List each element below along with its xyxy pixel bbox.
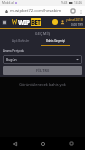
button[interactable]: Account xyxy=(60,20,65,25)
staticText: Bahis Geçmişi xyxy=(46,39,65,43)
button[interactable]: Back xyxy=(0,137,29,150)
staticText: m.wipbet72.com/hesabim xyxy=(10,8,62,14)
button[interactable]: More options xyxy=(77,8,84,15)
button[interactable]: Menu xyxy=(2,20,7,25)
staticText: 0.00 TRY xyxy=(71,23,83,27)
staticText: 14:26 xyxy=(74,1,83,5)
staticText: BET xyxy=(31,18,41,26)
staticText: Mobil.al xyxy=(2,1,14,5)
staticText: Bugün xyxy=(6,57,17,62)
staticText: %43 xyxy=(61,1,68,5)
staticText: yuksel2018 xyxy=(66,18,83,22)
button[interactable]: Recents xyxy=(57,137,85,150)
button[interactable]: Açık Bahisler xyxy=(0,36,41,46)
button[interactable]: Bahis Geçmişi xyxy=(41,36,70,46)
button[interactable]: Home xyxy=(29,137,57,150)
staticText: Görüntülenecek bahis yok xyxy=(19,82,66,87)
staticText: WIP xyxy=(18,18,30,26)
button[interactable]: Bugün xyxy=(3,55,82,64)
staticText: Açık Bahisler xyxy=(12,39,30,43)
button[interactable]: FİLTRE xyxy=(3,66,82,75)
staticText: Arama Periyodu xyxy=(3,49,25,53)
staticText: FİLTRE xyxy=(36,68,50,73)
button[interactable]: Bonus xyxy=(52,19,58,25)
button[interactable]: Tabs xyxy=(69,7,77,15)
button[interactable]: m.wipbet72.com/hesabim xyxy=(10,6,69,16)
staticText: GEÇMİŞ xyxy=(35,31,51,36)
